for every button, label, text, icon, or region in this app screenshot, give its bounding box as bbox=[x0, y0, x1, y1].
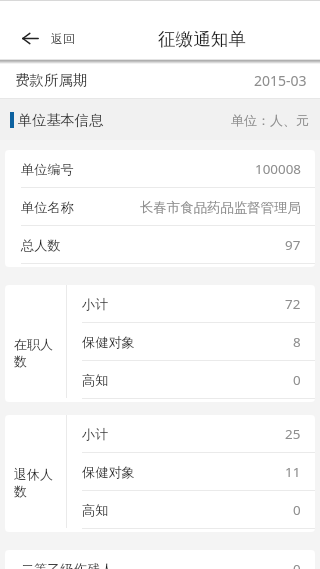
button[interactable]: 小计 bbox=[67, 415, 315, 453]
button[interactable]: 高知 bbox=[67, 491, 315, 529]
staticText: 单位：人、元 bbox=[231, 112, 309, 128]
staticText: 总人数 bbox=[21, 237, 61, 254]
staticText: 长春市食品药品监督管理局 bbox=[140, 199, 301, 216]
button[interactable]: 单位名称 bbox=[5, 188, 315, 226]
staticText: 小计 bbox=[82, 296, 109, 313]
staticText: 在职人数 bbox=[14, 336, 62, 370]
staticText: 0 bbox=[293, 371, 301, 389]
staticText: 单位编号 bbox=[21, 161, 74, 178]
staticText: 高知 bbox=[82, 502, 109, 519]
staticText: 退休人数 bbox=[14, 466, 62, 500]
button[interactable]: 单位编号 bbox=[5, 150, 315, 188]
staticText: 保健对象 bbox=[82, 334, 135, 351]
staticText: 0 bbox=[293, 560, 301, 569]
button[interactable]: 费款所属期 bbox=[0, 61, 320, 99]
button[interactable]: 小计 bbox=[67, 285, 315, 323]
staticText: 费款所属期 bbox=[15, 71, 88, 89]
staticText: 单位名称 bbox=[21, 199, 74, 216]
staticText: 8 bbox=[293, 333, 301, 351]
staticText: 单位基本信息 bbox=[18, 111, 104, 129]
staticText: 25 bbox=[285, 425, 301, 443]
staticText: 11 bbox=[285, 463, 301, 481]
staticText: 返回 bbox=[51, 31, 75, 46]
button[interactable]: 保健对象 bbox=[67, 323, 315, 361]
staticText: 小计 bbox=[82, 426, 109, 443]
staticText: 征缴通知单 bbox=[158, 28, 246, 50]
staticText: 保健对象 bbox=[82, 464, 135, 481]
button[interactable]: 高知 bbox=[67, 361, 315, 399]
button[interactable]: 保健对象 bbox=[67, 453, 315, 491]
button[interactable]: 二等乙级伤残人 bbox=[5, 550, 315, 569]
staticText: 100008 bbox=[255, 160, 301, 178]
button[interactable]: 总人数 bbox=[5, 226, 315, 264]
staticText: 97 bbox=[285, 236, 301, 254]
staticText: 72 bbox=[285, 295, 301, 313]
staticText: 二等乙级伤残人 bbox=[21, 561, 114, 569]
button[interactable]: 返回 bbox=[0, 25, 83, 52]
staticText: 高知 bbox=[82, 372, 109, 389]
staticText: 0 bbox=[293, 501, 301, 519]
staticText: 2015-03 bbox=[254, 71, 307, 90]
